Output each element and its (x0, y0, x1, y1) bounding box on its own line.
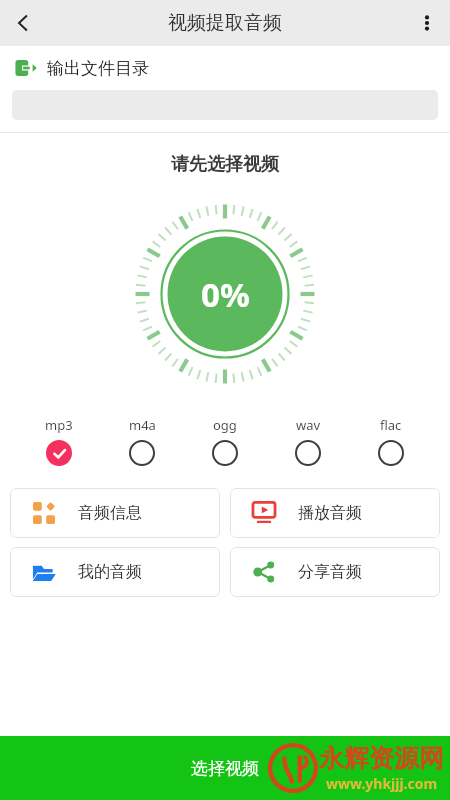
staticText: 永辉资源网 (319, 743, 444, 774)
button[interactable]: m4a (113, 416, 171, 466)
staticText: flac (380, 416, 402, 434)
button[interactable]: 播放音频 (230, 488, 440, 538)
button[interactable]: wav (279, 416, 337, 466)
button[interactable]: flac (362, 416, 420, 466)
staticText: 0% (201, 272, 250, 317)
staticText: 请先选择视频 (0, 153, 450, 176)
staticText: 音频信息 (78, 503, 142, 523)
button[interactable]: 分享音频 (230, 547, 440, 597)
staticText: 我的音频 (78, 562, 142, 582)
staticText: 输出文件目录 (47, 58, 149, 79)
staticText: 选择视频 (191, 758, 259, 779)
button[interactable]: 我的音频 (10, 547, 220, 597)
button[interactable]: ogg (196, 416, 254, 466)
staticText: 播放音频 (298, 503, 362, 523)
staticText: 视频提取音频 (168, 11, 282, 35)
staticText: ogg (213, 416, 237, 434)
button[interactable]: 输出文件目录 (0, 46, 450, 90)
staticText: m4a (129, 416, 156, 434)
staticText: wav (296, 416, 321, 434)
button[interactable]: 音频信息 (10, 488, 220, 538)
staticText: www.yhkjjj.com (326, 774, 438, 793)
button[interactable]: Back (0, 0, 46, 46)
staticText: mp3 (45, 416, 73, 434)
button[interactable]: More options (404, 0, 450, 46)
button[interactable]: mp3 (30, 416, 88, 466)
staticText: 分享音频 (298, 562, 362, 582)
button[interactable]: 选择视频 (0, 736, 450, 800)
